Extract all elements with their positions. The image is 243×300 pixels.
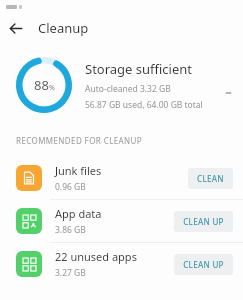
button[interactable]: Back <box>0 13 30 43</box>
staticText: 56.87 GB used, 64.00 GB total <box>85 99 203 111</box>
staticText: RECOMMENDED FOR CLEANUP <box>16 135 143 146</box>
button[interactable]: App data <box>0 200 243 242</box>
staticText: CLEAN UP <box>183 259 224 270</box>
staticText: CLEAN <box>197 173 224 184</box>
button[interactable]: CLEAN UP <box>174 211 233 232</box>
button[interactable]: Junk files <box>0 157 243 199</box>
staticText: 3.27 GB <box>55 267 86 279</box>
staticText: % <box>49 83 55 93</box>
staticText: CLEAN UP <box>183 216 224 227</box>
button[interactable]: CLEAN UP <box>174 254 233 275</box>
button[interactable]: CLEAN <box>188 168 233 189</box>
staticText: Junk files <box>55 163 102 178</box>
staticText: 88 <box>34 76 49 94</box>
staticText: 22 unused apps <box>55 249 137 264</box>
staticText: Cleanup <box>38 19 89 37</box>
staticText: App data <box>55 206 102 221</box>
staticText: Auto-cleaned 3.32 GB <box>85 83 171 95</box>
staticText: 0.96 GB <box>55 181 86 193</box>
staticText: Storage sufficient <box>85 60 193 78</box>
button[interactable]: 88 <box>0 57 243 113</box>
staticText: 3.86 GB <box>55 224 86 236</box>
button[interactable]: 22 unused apps <box>0 243 243 285</box>
